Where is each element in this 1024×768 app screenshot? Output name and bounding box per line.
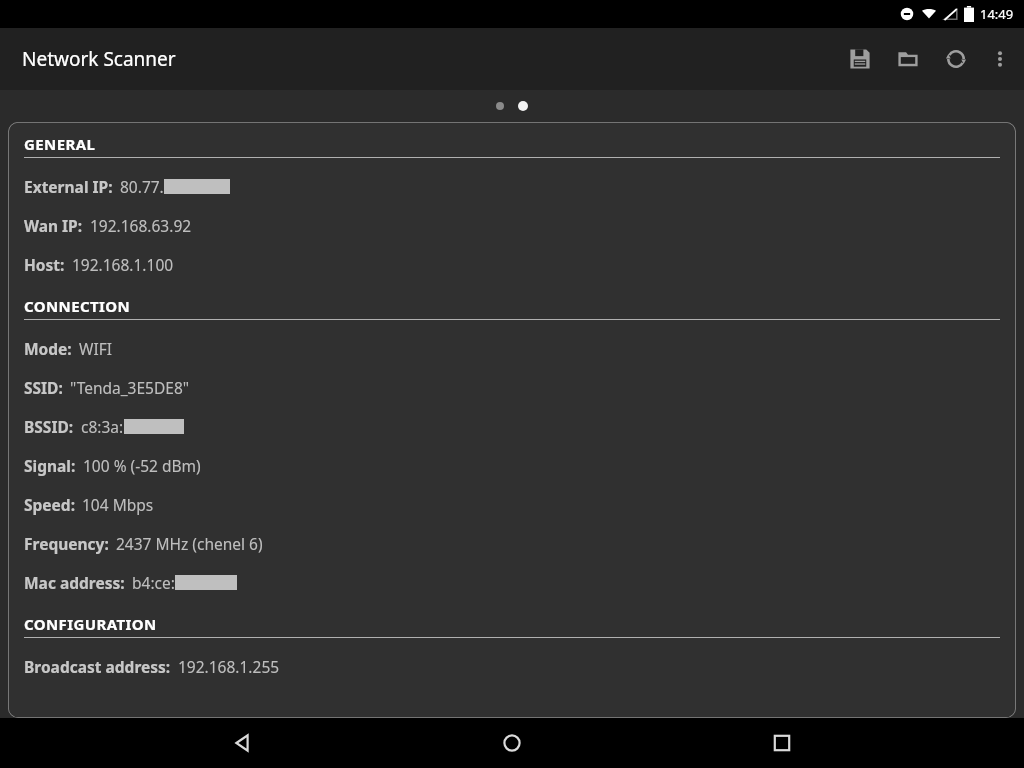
staticText: Mac address: [24,572,125,593]
staticText: Network Scanner [22,46,176,72]
button[interactable]: Open folder [884,31,932,87]
button[interactable]: Recent apps [754,718,810,768]
button[interactable]: Save [836,31,884,87]
staticText: CONFIGURATION [24,614,157,634]
staticText: 2437 MHz (chenel 6) [116,533,263,554]
button[interactable]: Mode: [24,329,1000,368]
staticText: 14:49 [980,5,1014,23]
staticText: BSSID: [24,416,74,437]
button[interactable]: External IP: [24,167,1000,206]
staticText: c8:3a: [81,416,124,437]
staticText: Host: [24,254,65,275]
staticText: Broadcast address: [24,656,171,677]
button[interactable]: Home [484,718,540,768]
staticText: GENERAL [24,134,96,154]
button[interactable]: Broadcast address: [24,647,1000,686]
staticText: 192.168.1.255 [178,656,280,677]
button[interactable]: SSID: [24,368,1000,407]
staticText: Mode: [24,338,72,359]
staticText: CONNECTION [24,296,131,316]
staticText: Signal: [24,455,76,476]
button[interactable]: Refresh [932,31,980,87]
staticText: "Tenda_3E5DE8" [70,377,190,398]
staticText: 192.168.63.92 [90,215,192,236]
button[interactable]: Host: [24,245,1000,284]
staticText: Frequency: [24,533,109,554]
staticText: External IP: [24,176,113,197]
staticText: 100 % (-52 dBm) [83,455,201,476]
button[interactable]: More options [980,31,1020,87]
button[interactable]: Frequency: [24,524,1000,563]
button[interactable]: BSSID: [24,407,1000,446]
button[interactable]: Back [214,718,270,768]
staticText: b4:ce: [132,572,175,593]
staticText: Speed: [24,494,75,515]
staticText: 104 Mbps [82,494,154,515]
staticText: Wan IP: [24,215,83,236]
staticText: 192.168.1.100 [72,254,174,275]
button[interactable]: Wan IP: [24,206,1000,245]
button[interactable]: Mac address: [24,563,1000,602]
staticText: 80.77. [120,176,164,197]
staticText: WIFI [79,338,112,359]
button[interactable]: Signal: [24,446,1000,485]
button[interactable]: Speed: [24,485,1000,524]
staticText: SSID: [24,377,63,398]
